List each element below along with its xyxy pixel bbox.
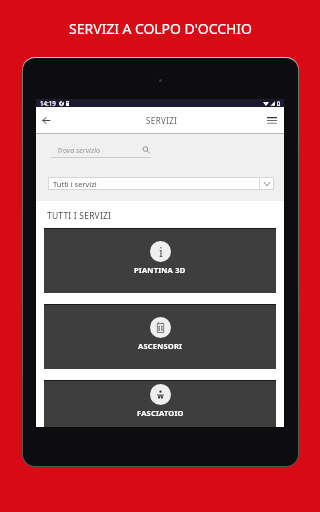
staticText: Tutti i servizi (53, 179, 97, 189)
staticText: i (159, 244, 163, 260)
button[interactable]: Back (36, 111, 55, 130)
staticText: ASCENSORI (138, 341, 183, 351)
staticText: FASCIATOIO (137, 408, 184, 418)
button[interactable]: Trova servizio (51, 144, 151, 156)
staticText: 14:19 (40, 99, 56, 107)
button[interactable]: Menu (262, 110, 282, 130)
staticText: PIANTINA 3D (134, 265, 186, 275)
button[interactable]: Tutti i servizi (48, 177, 274, 190)
button[interactable]: FASCIATOIO (44, 380, 276, 427)
staticText: TUTTI I SERVIZI (47, 210, 112, 222)
staticText: SERVIZI A COLPO D'OCCHIO (69, 19, 252, 38)
button[interactable]: i (44, 228, 276, 293)
staticText: Trova servizio (57, 145, 101, 155)
button[interactable]: ASCENSORI (44, 304, 276, 369)
staticText: SERVIZI (146, 115, 178, 126)
